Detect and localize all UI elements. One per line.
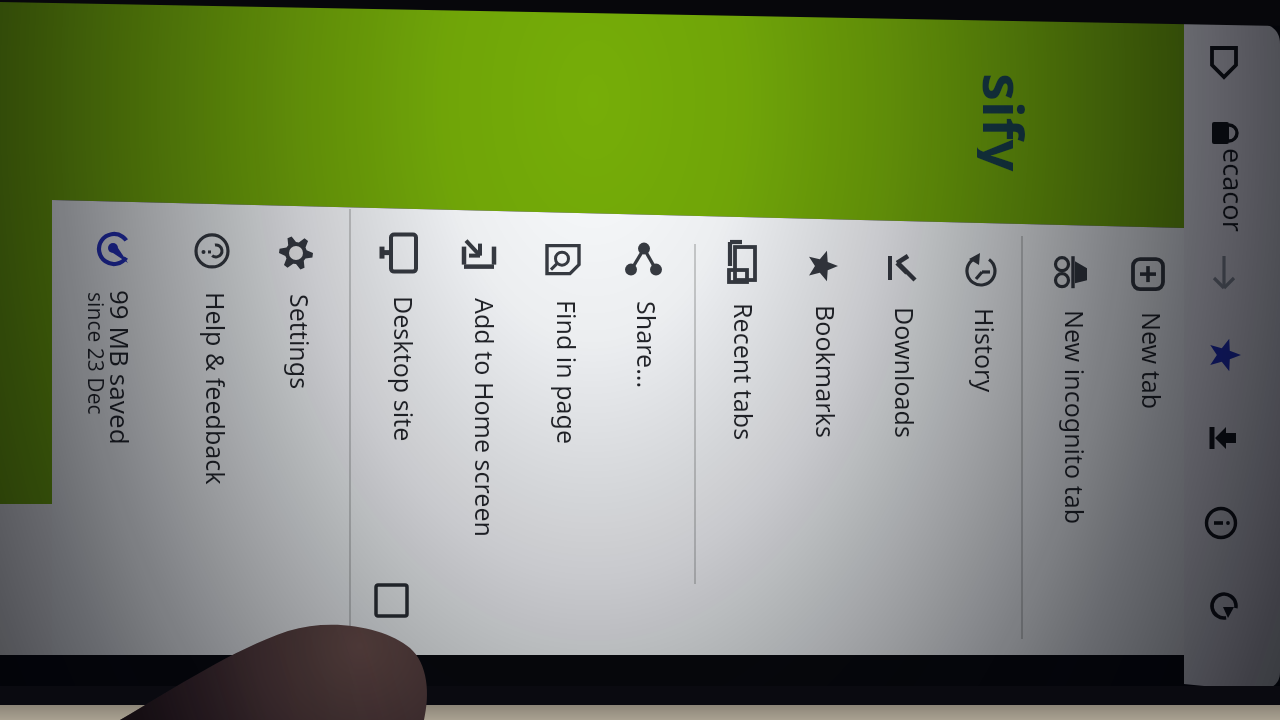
staticText: Help & feedback bbox=[199, 292, 233, 485]
staticText: Find in page bbox=[550, 300, 584, 445]
staticText: Settings bbox=[283, 294, 317, 390]
staticText: New tab bbox=[1135, 312, 1169, 410]
button[interactable]: Page info bbox=[1190, 483, 1260, 559]
staticText: Bookmarks bbox=[809, 305, 843, 438]
button[interactable] bbox=[74, 208, 158, 642]
button[interactable]: Reload bbox=[1190, 566, 1260, 642]
button[interactable] bbox=[939, 229, 1020, 641]
button[interactable]: Open in Chrome bbox=[1190, 400, 1260, 476]
button[interactable] bbox=[170, 210, 251, 622]
button[interactable] bbox=[1106, 233, 1187, 645]
button[interactable] bbox=[1029, 231, 1110, 643]
staticText: Downloads bbox=[888, 307, 922, 438]
staticText: Add to Home screen bbox=[468, 298, 502, 537]
button[interactable] bbox=[780, 225, 861, 637]
button[interactable] bbox=[358, 215, 439, 627]
button[interactable] bbox=[698, 223, 779, 635]
staticText: Share... bbox=[630, 301, 664, 389]
staticText: 99 MB saved bbox=[103, 290, 138, 445]
button[interactable]: Download bbox=[1190, 234, 1260, 310]
button[interactable]: Home bbox=[1190, 28, 1260, 100]
staticText: Recent tabs bbox=[727, 303, 761, 441]
staticText: ecacor bbox=[1215, 148, 1252, 232]
staticText: History bbox=[968, 308, 1002, 393]
button[interactable] bbox=[601, 221, 682, 633]
staticText: sify bbox=[977, 73, 1043, 172]
button[interactable] bbox=[859, 227, 940, 639]
button[interactable] bbox=[254, 212, 335, 624]
button[interactable]: Address bar bbox=[1190, 100, 1280, 225]
button[interactable] bbox=[439, 217, 520, 629]
button[interactable]: Bookmark bbox=[1190, 317, 1260, 393]
staticText: since 23 Dec bbox=[81, 292, 110, 415]
button[interactable] bbox=[521, 219, 602, 631]
staticText: New incognito tab bbox=[1058, 310, 1092, 525]
staticText: Desktop site bbox=[387, 296, 421, 442]
